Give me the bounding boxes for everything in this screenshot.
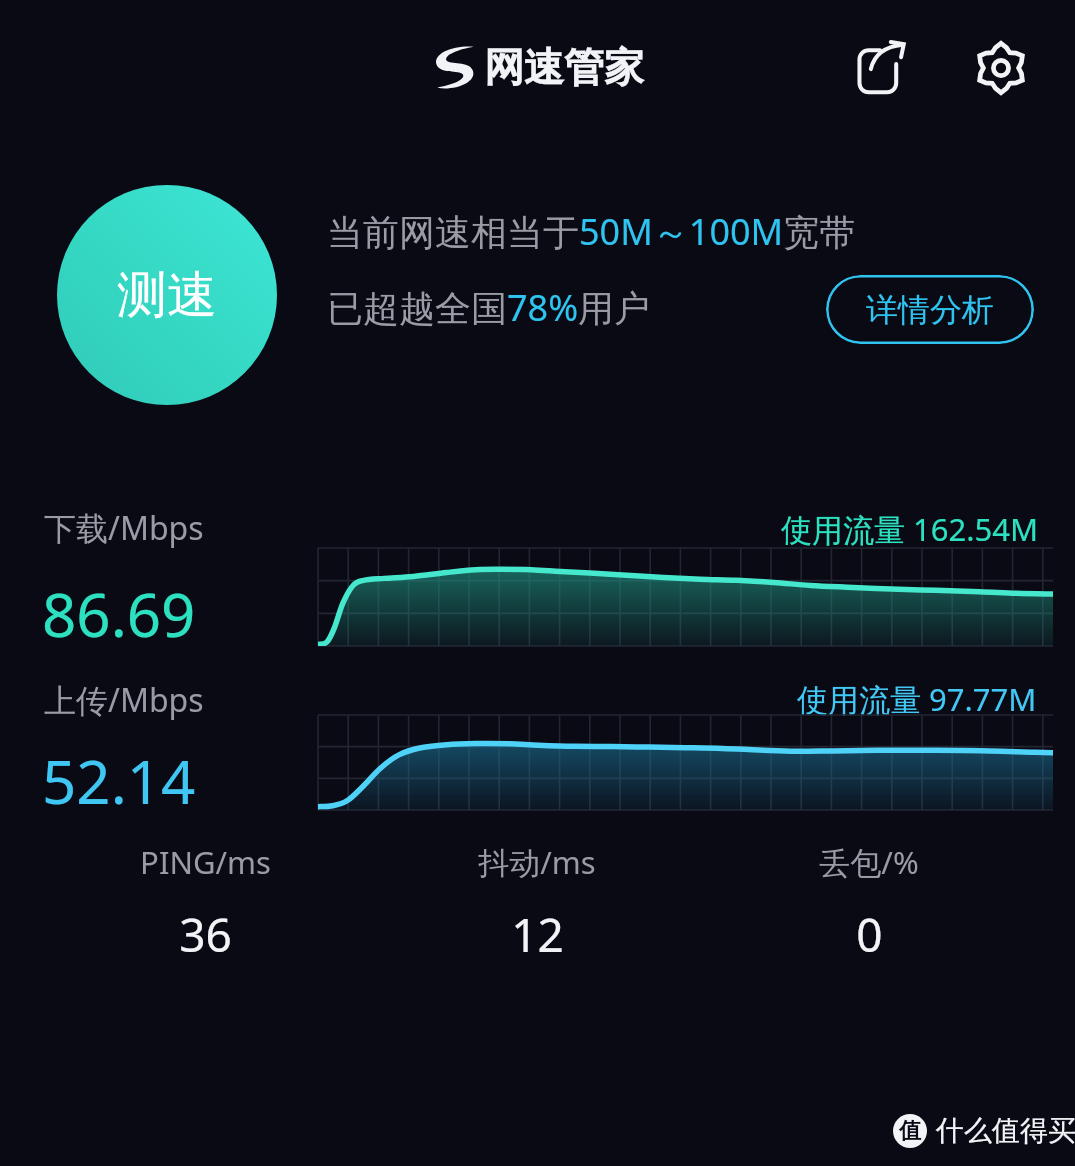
- staticText: 52.14: [42, 740, 196, 822]
- staticText: 详情分析: [866, 290, 994, 330]
- button[interactable]: 测速: [57, 185, 277, 405]
- staticText: 使用流量 162.54M: [781, 508, 1039, 550]
- staticText: 值: [899, 1117, 921, 1145]
- button[interactable]: Settings: [963, 30, 1039, 106]
- staticText: 丢包/%: [819, 841, 919, 883]
- staticText: 网速管家: [484, 42, 644, 92]
- staticText: 测速: [117, 264, 217, 327]
- staticText: 抖动/ms: [478, 841, 596, 883]
- staticText: 12: [511, 903, 564, 961]
- staticText: 86.69: [42, 573, 196, 655]
- staticText: 上传/Mbps: [44, 678, 204, 722]
- staticText: 下载/Mbps: [44, 506, 204, 550]
- staticText: 已超越全国78%用户: [327, 283, 651, 332]
- staticText: PING/ms: [140, 841, 271, 883]
- button[interactable]: 详情分析: [826, 275, 1034, 344]
- staticText: 36: [179, 903, 232, 961]
- staticText: 当前网速相当于50M～100M宽带: [327, 207, 856, 256]
- staticText: 什么值得买: [936, 1113, 1075, 1148]
- button[interactable]: Share: [842, 30, 918, 106]
- staticText: 0: [856, 903, 883, 961]
- staticText: 使用流量 97.77M: [797, 678, 1037, 720]
